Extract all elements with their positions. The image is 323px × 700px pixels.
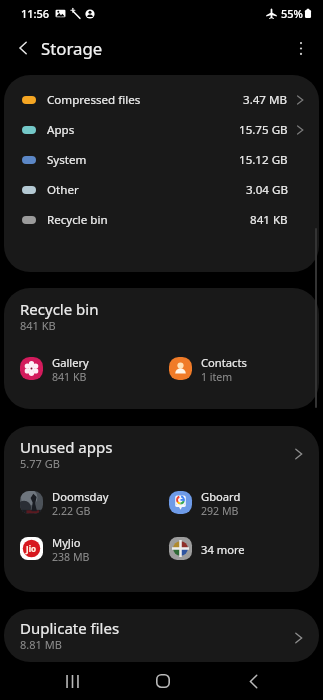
staticText: 841 KB: [52, 370, 87, 384]
staticText: 841 KB: [20, 318, 56, 333]
button[interactable]: Recycle bin: [4, 205, 319, 235]
button[interactable]: Jio: [4, 532, 153, 565]
button[interactable]: Back: [223, 662, 283, 700]
staticText: Recycle bin: [20, 299, 99, 319]
staticText: Gboard: [201, 489, 241, 504]
staticText: 11:56: [21, 6, 50, 21]
staticText: System: [47, 152, 87, 168]
button[interactable]: Navigate up: [5, 30, 41, 66]
button[interactable]: Gboard: [153, 486, 319, 519]
staticText: 34 more: [201, 542, 245, 557]
button[interactable]: Other: [4, 175, 319, 205]
staticText: 5.77 GB: [20, 456, 60, 471]
staticText: 3.04 GB: [246, 182, 288, 198]
button[interactable]: System: [4, 145, 319, 175]
staticText: Duplicate files: [20, 618, 120, 638]
staticText: 2.22 GB: [52, 504, 91, 518]
staticText: Doomsday: [52, 489, 109, 504]
staticText: MyJio: [52, 535, 81, 550]
button[interactable]: Gallery: [4, 352, 153, 385]
button[interactable]: More options: [283, 30, 319, 66]
button[interactable]: Recycle bin: [4, 288, 319, 343]
staticText: Recycle bin: [47, 212, 108, 228]
staticText: 3.47 MB: [243, 92, 288, 108]
button[interactable]: 34 more: [153, 532, 319, 565]
staticText: 55%: [281, 6, 303, 21]
staticText: Jio: [26, 543, 37, 554]
staticText: 1 item: [201, 370, 233, 384]
staticText: Unused apps: [20, 437, 113, 457]
button[interactable]: Apps: [4, 115, 319, 145]
button[interactable]: Compressed files: [4, 85, 319, 115]
button[interactable]: Duplicate files: [4, 609, 319, 662]
staticText: 15.75 GB: [239, 122, 288, 138]
staticText: Storage: [41, 37, 103, 60]
button[interactable]: Recent apps: [42, 662, 102, 700]
staticText: Compressed files: [47, 92, 141, 108]
button[interactable]: Doomsday: [4, 486, 153, 519]
button[interactable]: Home: [133, 662, 193, 700]
staticText: 8.81 MB: [20, 637, 62, 652]
button[interactable]: Unused apps: [4, 426, 319, 481]
staticText: Contacts: [201, 355, 247, 370]
staticText: Other: [47, 182, 79, 198]
staticText: 292 MB: [201, 504, 239, 518]
staticText: Gallery: [52, 355, 89, 370]
staticText: 841 KB: [250, 212, 288, 228]
staticText: 238 MB: [52, 550, 90, 564]
staticText: 15.12 GB: [239, 152, 288, 168]
staticText: Apps: [47, 122, 75, 138]
button[interactable]: Contacts: [153, 352, 319, 385]
